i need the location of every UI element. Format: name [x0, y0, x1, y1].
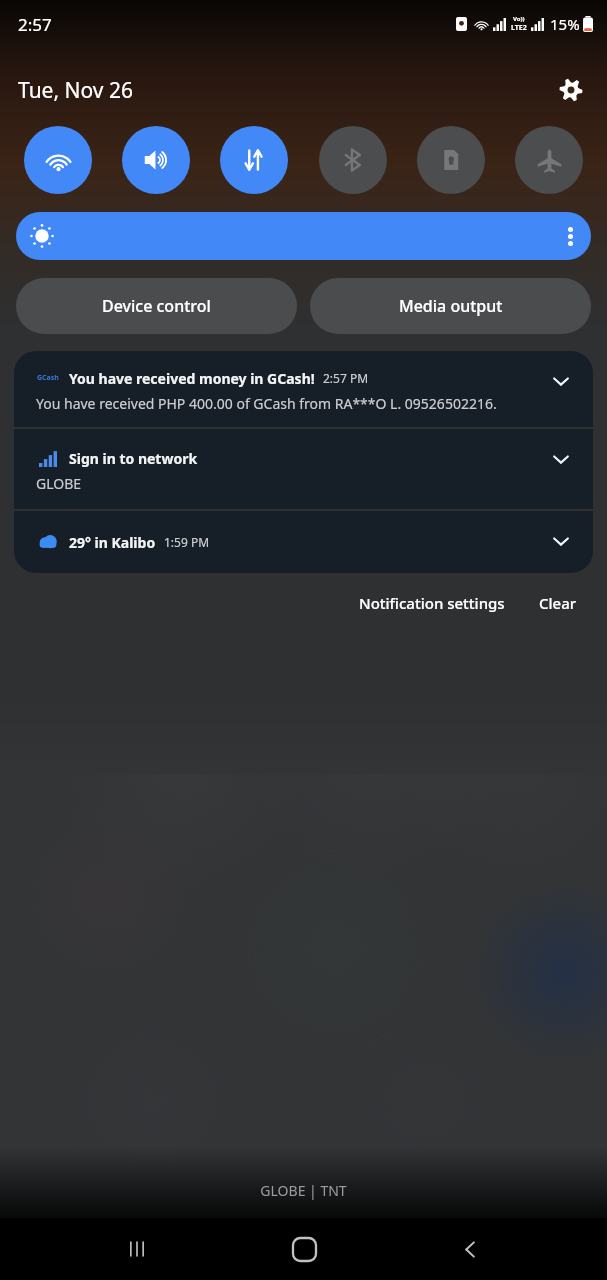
staticText: Tue, Nov 26 [18, 76, 133, 105]
staticText: Notification settings [359, 593, 505, 613]
button[interactable]: Sign in to network [14, 429, 593, 509]
button[interactable]: Sound [122, 126, 190, 194]
button[interactable]: Expand notification [545, 365, 577, 397]
button[interactable]: Device control [16, 278, 297, 334]
staticText: LTE2 [511, 23, 527, 33]
button[interactable]: Expand notification [545, 525, 577, 557]
button[interactable]: Bluetooth [319, 126, 387, 194]
button[interactable]: Brightness [16, 212, 591, 260]
button[interactable]: SIM lock [417, 126, 485, 194]
button[interactable]: Mobile data [220, 126, 288, 194]
staticText: GCash [37, 373, 59, 383]
staticText: 1:59 PM [164, 534, 210, 550]
staticText: Sign in to network [69, 449, 198, 468]
button[interactable]: Wi-Fi [24, 126, 92, 194]
staticText: 29° in Kalibo [69, 533, 156, 552]
staticText: GLOBE [36, 474, 82, 493]
button[interactable]: Expand notification [545, 443, 577, 475]
staticText: Clear [539, 593, 577, 613]
button[interactable]: Clear [531, 585, 585, 621]
button[interactable]: Media output [310, 278, 591, 334]
staticText: Device control [102, 295, 211, 317]
button[interactable]: Home [274, 1219, 334, 1279]
staticText: Vo)) [513, 15, 525, 23]
button[interactable]: Airplane mode [515, 126, 583, 194]
staticText: Media output [399, 295, 503, 317]
button[interactable]: Recents [107, 1219, 167, 1279]
staticText: 2:57 [18, 13, 52, 36]
staticText: You have received PHP 400.00 of GCash fr… [36, 394, 497, 413]
staticText: You have received money in GCash! [69, 369, 315, 388]
button[interactable]: GCash [14, 351, 593, 427]
staticText: 15% [550, 14, 580, 34]
staticText: GLOBE | TNT [0, 1181, 607, 1200]
button[interactable]: 29° in Kalibo [14, 511, 593, 573]
button[interactable]: Settings [551, 70, 591, 110]
button[interactable]: Notification settings [351, 585, 513, 621]
button[interactable]: Back [440, 1219, 500, 1279]
staticText: 2:57 PM [323, 370, 369, 386]
